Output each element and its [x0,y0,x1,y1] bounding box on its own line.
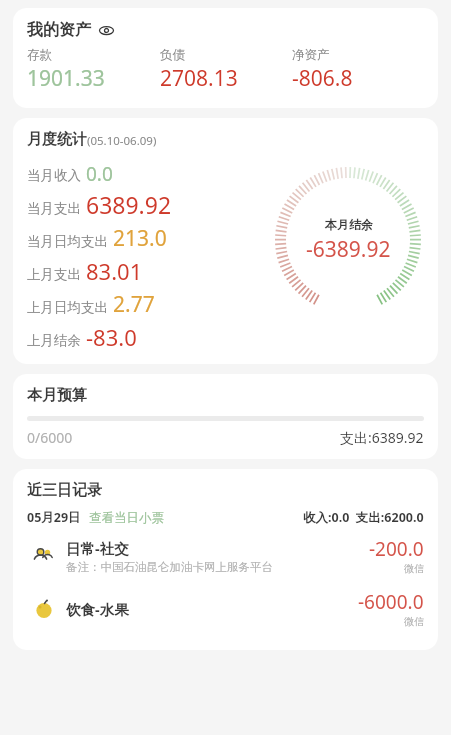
staticText: 日常-社交 [66,538,129,558]
staticText: 饮食-水果 [66,599,129,619]
staticText: 2708.13 [160,64,238,93]
staticText: 收入:0.0 支出:6200.0 [303,509,424,526]
staticText: 查看当日小票 [89,510,164,526]
staticText: 支出:6389.92 [340,428,424,447]
staticText: 上月结余 [27,332,81,349]
staticText: (05.10-06.09) [87,133,157,149]
staticText: 上月支出 [27,266,81,283]
button[interactable]: 饮食-水果 [27,589,424,628]
staticText: 上月日均支出 [27,299,108,316]
staticText: 6389.92 [86,189,172,220]
button[interactable]: 我的资产 显示或隐藏金额 [27,20,114,40]
staticText: 1901.33 [27,64,105,93]
staticText: 213.0 [113,224,167,253]
button[interactable]: 日常-社交 [27,536,424,575]
staticText: -6000.0 [358,589,424,615]
staticText: 当月日均支出 [27,233,108,250]
staticText: 83.01 [86,256,143,286]
staticText: 本月预算 [27,386,87,405]
staticText: 备注：中国石油昆仑加油卡网上服务平台 [66,560,273,574]
staticText: 本月结余 [325,217,373,232]
staticText: 近三日记录 [27,481,102,500]
staticText: 05月29日 [27,509,81,526]
staticText: 微信 [404,562,424,575]
staticText: 0/6000 [27,428,73,447]
button[interactable]: 查看当日小票 [89,510,164,526]
staticText: 当月收入 [27,167,81,184]
staticText: -200.0 [369,536,424,562]
staticText: 2.77 [113,290,155,319]
staticText: -806.8 [292,64,353,93]
staticText: 净资产 [292,47,330,63]
staticText: 0.0 [86,161,113,187]
staticText: -6389.92 [306,235,391,264]
staticText: 微信 [404,615,424,628]
staticText: 当月支出 [27,200,81,217]
staticText: -83.0 [86,322,137,352]
staticText: 月度统计 [27,130,87,149]
staticText: 负债 [160,47,185,63]
staticText: 存款 [27,47,52,63]
staticText: 我的资产 [27,20,91,40]
